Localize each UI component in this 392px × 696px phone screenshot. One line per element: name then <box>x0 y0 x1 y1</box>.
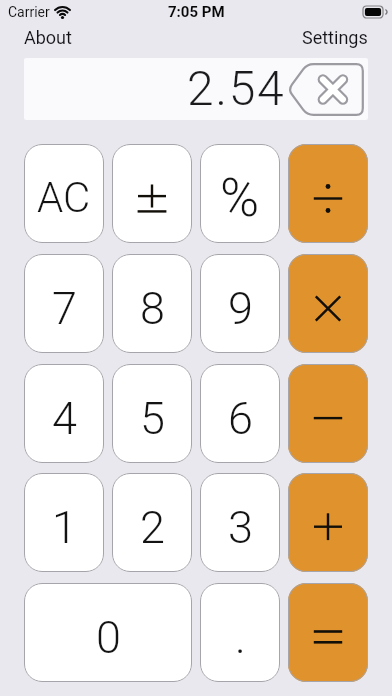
button[interactable]: AC <box>24 144 104 243</box>
button[interactable]: 6 <box>200 364 280 463</box>
staticText: Carrier <box>8 4 50 20</box>
button[interactable] <box>288 473 368 572</box>
staticText: 1 <box>52 501 77 554</box>
button[interactable]: . <box>200 583 280 682</box>
staticText: Settings <box>302 27 368 48</box>
button[interactable] <box>288 254 368 353</box>
staticText: 9 <box>228 282 253 335</box>
button[interactable] <box>112 144 192 243</box>
button[interactable] <box>287 63 364 116</box>
staticText: AC <box>37 173 91 222</box>
button[interactable]: 4 <box>24 364 104 463</box>
staticText: 7 <box>52 282 77 335</box>
staticText: 2.54 <box>187 60 286 116</box>
staticText: 6 <box>228 392 253 445</box>
button[interactable]: 3 <box>200 473 280 572</box>
button[interactable] <box>288 144 368 243</box>
button[interactable]: 5 <box>112 364 192 463</box>
button[interactable]: Settings <box>302 27 368 48</box>
button[interactable]: About <box>24 27 72 48</box>
button[interactable] <box>288 364 368 463</box>
staticText: About <box>24 27 72 48</box>
staticText: 5 <box>140 392 165 445</box>
staticText: 2 <box>140 501 165 554</box>
button[interactable]: 8 <box>112 254 192 353</box>
staticText: 3 <box>228 501 253 554</box>
staticText: . <box>235 611 246 664</box>
staticText: 8 <box>140 282 165 335</box>
button[interactable]: 1 <box>24 473 104 572</box>
staticText: % <box>220 167 260 229</box>
button[interactable]: % <box>200 144 280 243</box>
button[interactable]: 0 <box>24 583 192 682</box>
staticText: 0 <box>96 611 121 664</box>
button[interactable]: 7 <box>24 254 104 353</box>
button[interactable]: 9 <box>200 254 280 353</box>
button[interactable] <box>288 583 368 682</box>
staticText: 7:05 PM <box>168 3 225 21</box>
staticText: 4 <box>52 392 77 445</box>
button[interactable]: 2 <box>112 473 192 572</box>
